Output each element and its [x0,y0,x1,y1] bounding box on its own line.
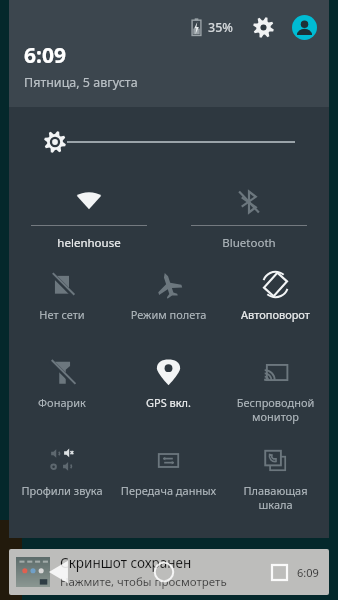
staticText: Скриншот сохранен [60,554,192,572]
button[interactable]: Профили звука [9,435,115,517]
staticText: 35% [208,19,233,36]
button[interactable]: Expand [271,564,288,581]
staticText: Нет сети [12,307,112,322]
staticText: Bluetooth [169,235,329,251]
staticText: Передача данных [118,483,219,498]
button[interactable]: Back [45,558,73,586]
button[interactable]: Беспроводной монитор [222,347,329,435]
button[interactable]: Brightness [9,107,329,177]
staticText: Режим полета [118,307,219,322]
staticText: Нажмите, чтобы просмотреть [60,574,227,590]
button[interactable]: Settings [249,13,277,41]
staticText: Автоповорот [225,307,326,322]
button[interactable]: Плавающая шкала [222,435,329,517]
button[interactable]: Home [153,561,175,583]
button[interactable]: Передача данных [115,435,222,517]
button[interactable]: Автоповорот [222,259,329,347]
button[interactable]: helenhouse [9,177,169,259]
button[interactable]: Скриншот сохранен [9,549,329,595]
button[interactable]: Нет сети [9,259,115,347]
button[interactable]: User profile [289,12,319,42]
button[interactable]: Фонарик [9,347,115,435]
staticText: Беспроводной монитор [225,395,326,424]
button[interactable]: Режим полета [115,259,222,347]
button[interactable]: GPS вкл. [115,347,222,435]
staticText: Пятница, 5 августа [24,74,138,91]
staticText: 6:09 [297,565,319,580]
staticText: Плавающая шкала [225,483,326,512]
staticText: helenhouse [9,235,169,251]
staticText: 6:09 [24,41,66,70]
staticText: Фонарик [12,395,112,410]
staticText: Профили звука [12,483,112,498]
button[interactable]: Bluetooth [169,177,329,259]
staticText: GPS вкл. [118,395,219,410]
